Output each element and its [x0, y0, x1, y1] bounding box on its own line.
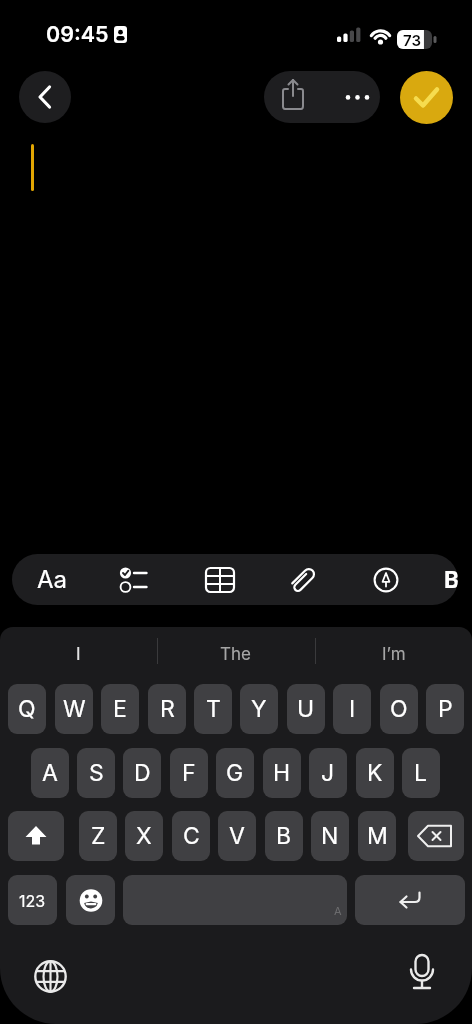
staticText: F [182, 759, 196, 787]
button[interactable] [8, 811, 64, 861]
staticText: I [349, 695, 356, 723]
button[interactable]: Z [79, 811, 117, 861]
button[interactable]: A [123, 875, 347, 925]
button[interactable] [28, 954, 73, 999]
staticText: L [414, 759, 428, 787]
button[interactable]: V [218, 811, 256, 861]
staticText: A [334, 904, 342, 917]
staticText: N [321, 822, 339, 850]
staticText: M [367, 822, 388, 850]
button[interactable]: N [311, 811, 349, 861]
button[interactable]: Aa [31, 554, 73, 605]
staticText: E [113, 695, 127, 723]
button[interactable] [399, 949, 444, 997]
button[interactable]: K [356, 748, 394, 798]
button[interactable]: L [402, 748, 440, 798]
button[interactable]: E [101, 684, 139, 734]
staticText: U [297, 695, 315, 723]
button[interactable]: O [380, 684, 418, 734]
button[interactable] [400, 71, 453, 124]
button[interactable]: I [333, 684, 371, 734]
staticText: The [220, 644, 251, 665]
button[interactable] [408, 811, 464, 861]
button[interactable] [370, 554, 402, 605]
button[interactable]: T [194, 684, 232, 734]
button[interactable]: The [157, 633, 314, 675]
staticText: T [206, 695, 221, 723]
button[interactable]: 123 [8, 875, 57, 925]
button[interactable] [355, 875, 465, 925]
button[interactable]: B [265, 811, 303, 861]
button[interactable]: S [77, 748, 115, 798]
staticText: I [76, 644, 81, 665]
staticText: B [444, 566, 458, 594]
staticText: B [276, 822, 292, 850]
button[interactable]: B [440, 554, 458, 605]
button[interactable] [204, 554, 236, 605]
staticText: Z [91, 822, 106, 850]
button[interactable] [66, 875, 115, 925]
button[interactable]: G [216, 748, 254, 798]
staticText: 09:45 [46, 21, 109, 47]
staticText: Aa [37, 565, 68, 594]
button[interactable]: H [263, 748, 301, 798]
staticText: 73 [403, 31, 421, 49]
button[interactable]: M [358, 811, 396, 861]
staticText: Q [18, 695, 36, 723]
staticText: 123 [19, 891, 46, 910]
button[interactable]: I’m [315, 633, 472, 675]
button[interactable]: F [170, 748, 208, 798]
staticText: V [229, 822, 245, 850]
button[interactable]: W [55, 684, 93, 734]
button[interactable] [19, 71, 71, 123]
staticText: H [273, 759, 291, 787]
staticText: Y [251, 695, 267, 723]
staticText: W [63, 695, 86, 723]
button[interactable]: D [123, 748, 161, 798]
button[interactable] [322, 71, 380, 123]
button[interactable]: J [309, 748, 347, 798]
staticText: K [367, 759, 383, 787]
button[interactable] [117, 554, 149, 605]
button[interactable]: C [172, 811, 210, 861]
button[interactable]: X [125, 811, 163, 861]
staticText: G [226, 759, 244, 787]
staticText: R [160, 695, 175, 723]
staticText: D [134, 759, 151, 787]
staticText: J [321, 759, 335, 787]
staticText: O [390, 695, 408, 723]
button[interactable]: Y [240, 684, 278, 734]
button[interactable]: R [148, 684, 186, 734]
button[interactable]: I [0, 633, 157, 675]
staticText: S [89, 759, 104, 787]
staticText: I’m [382, 644, 406, 665]
button[interactable] [286, 554, 318, 605]
button[interactable] [264, 71, 322, 123]
staticText: X [136, 822, 152, 850]
button[interactable]: U [287, 684, 325, 734]
staticText: A [42, 759, 58, 787]
button[interactable]: Q [8, 684, 46, 734]
button[interactable]: P [426, 684, 464, 734]
staticText: P [438, 695, 453, 723]
staticText: C [183, 822, 200, 850]
button[interactable]: A [31, 748, 69, 798]
